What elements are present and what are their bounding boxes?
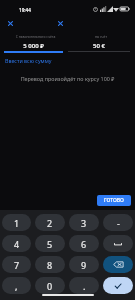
other: Пробел	[111, 237, 125, 251]
staticText: 8	[47, 259, 53, 271]
staticText: ГОТОВО	[104, 197, 124, 204]
staticText: С накопительного счёта	[6, 34, 65, 39]
staticText: 6	[81, 238, 87, 250]
staticText: 4	[14, 238, 20, 250]
button[interactable]: 9	[69, 256, 99, 273]
button[interactable]: 6	[69, 235, 99, 252]
staticText: 0	[47, 280, 53, 292]
staticText: 50 €	[68, 42, 130, 50]
button[interactable]: 3	[69, 214, 99, 231]
button[interactable]: 1	[2, 214, 31, 231]
button[interactable]: Очистить	[7, 20, 14, 27]
button[interactable]: -	[103, 214, 133, 231]
button[interactable]: 0	[35, 277, 65, 294]
button[interactable]: Пробел	[103, 235, 133, 252]
button[interactable]: Ввести всю сумму	[5, 57, 52, 64]
button[interactable]: Готово	[103, 277, 133, 294]
button[interactable]: 5	[35, 235, 65, 252]
staticText: Ввести всю сумму	[5, 57, 52, 64]
staticText: 9	[81, 259, 87, 271]
button[interactable]: .	[69, 277, 99, 294]
other: Готово	[113, 281, 123, 291]
button[interactable]: Стереть	[103, 256, 133, 273]
other: Стереть	[113, 259, 124, 270]
staticText: 5	[47, 238, 53, 250]
staticText: 2	[47, 217, 53, 229]
button[interactable]: 7	[2, 256, 31, 273]
staticText: Перевод произойдёт по курсу 100 ₽	[0, 75, 135, 82]
staticText: 5 000 ₽	[4, 42, 63, 50]
staticText: 1	[14, 217, 20, 229]
button[interactable]: Очистить	[57, 20, 64, 27]
button[interactable]: ГОТОВО	[97, 195, 131, 206]
button[interactable]: 4	[2, 235, 31, 252]
staticText: 3	[81, 217, 87, 229]
button[interactable]: ,	[2, 277, 31, 294]
button[interactable]: 2	[35, 214, 65, 231]
staticText: -	[117, 217, 120, 229]
staticText: ,	[15, 280, 18, 292]
staticText: .	[83, 280, 86, 292]
staticText: 7	[14, 259, 20, 271]
staticText: 19:44	[19, 7, 31, 13]
button[interactable]: 8	[35, 256, 65, 273]
staticText: на счёт	[70, 34, 132, 39]
